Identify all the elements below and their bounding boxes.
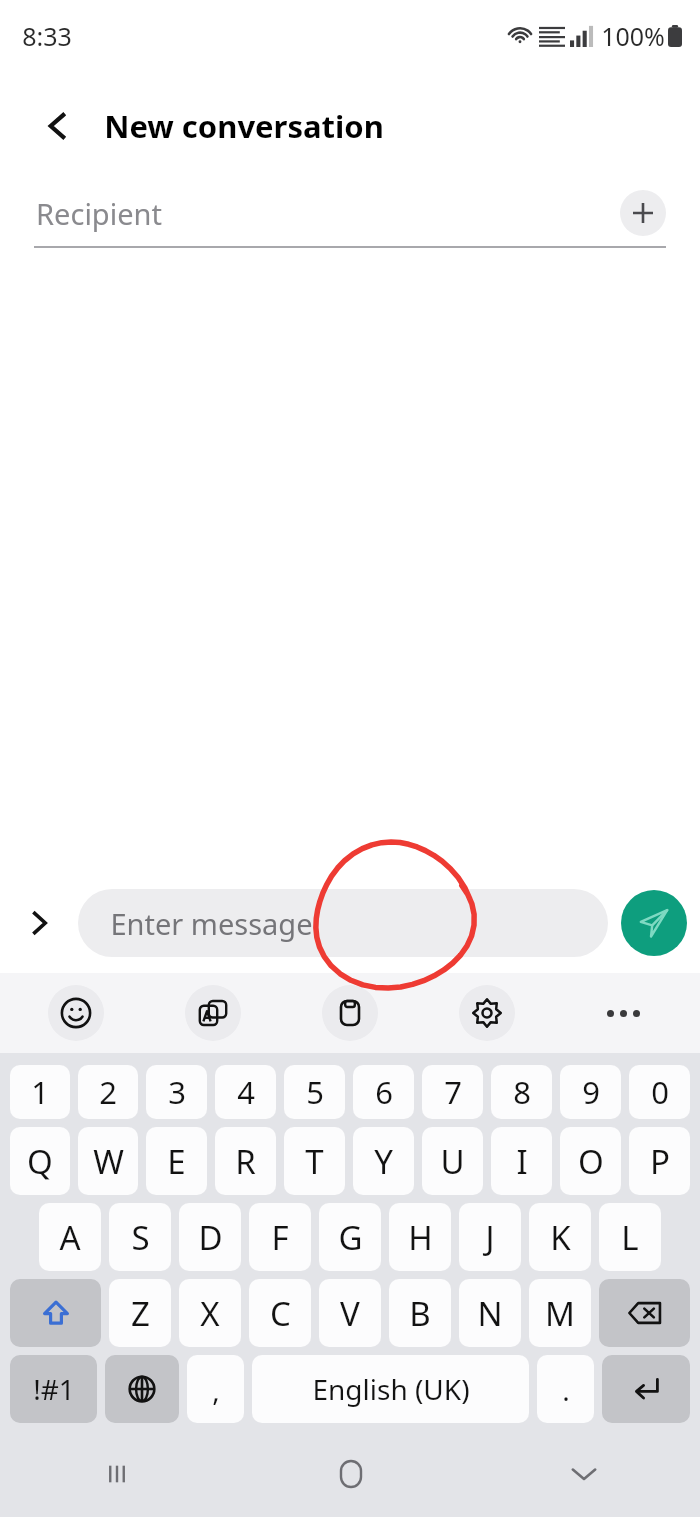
button[interactable]: Y [353, 1127, 414, 1195]
button[interactable]: 1 [10, 1065, 70, 1119]
button[interactable]: S [109, 1203, 171, 1271]
staticText: X [200, 1291, 220, 1336]
staticText: 8:33 [22, 19, 72, 53]
button[interactable]: H [389, 1203, 451, 1271]
staticText: 0 [651, 1071, 669, 1113]
staticText: C [270, 1291, 291, 1336]
button[interactable]: 5 [284, 1065, 345, 1119]
button[interactable]: Settings [418, 973, 555, 1053]
button[interactable]: X [179, 1279, 241, 1347]
button[interactable]: F [249, 1203, 311, 1271]
button[interactable]: Recents [0, 1431, 234, 1517]
button[interactable]: Hide keyboard [467, 1431, 700, 1517]
button[interactable]: enter [602, 1355, 690, 1423]
button[interactable]: globe [105, 1355, 179, 1423]
staticText: Z [131, 1291, 150, 1336]
button[interactable]: C [249, 1279, 311, 1347]
staticText: 100% [601, 19, 665, 53]
staticText: E [167, 1139, 186, 1184]
button[interactable]: Add recipient [620, 190, 666, 236]
button[interactable]: Clipboard [281, 973, 418, 1053]
staticText: B [409, 1291, 431, 1336]
button[interactable]: R [215, 1127, 276, 1195]
button[interactable]: 8 [491, 1065, 552, 1119]
button[interactable]: More options [555, 973, 692, 1053]
button[interactable]: D [179, 1203, 241, 1271]
button[interactable]: 6 [353, 1065, 414, 1119]
staticText: , [212, 1371, 220, 1409]
button[interactable]: T [284, 1127, 345, 1195]
button[interactable]: Emoji [8, 973, 144, 1053]
staticText: I [516, 1139, 528, 1184]
button[interactable]: 4 [215, 1065, 276, 1119]
button[interactable]: , [187, 1355, 244, 1423]
button[interactable]: J [459, 1203, 521, 1271]
staticText: V [340, 1291, 360, 1336]
staticText: 7 [444, 1071, 462, 1113]
staticText: H [408, 1215, 433, 1260]
staticText: K [550, 1215, 571, 1260]
staticText: 6 [375, 1071, 393, 1113]
staticText: D [198, 1215, 223, 1260]
staticText: N [477, 1291, 503, 1336]
button[interactable]: V [319, 1279, 381, 1347]
staticText: 1 [31, 1071, 49, 1113]
staticText: G [338, 1215, 363, 1260]
button[interactable]: 7 [422, 1065, 483, 1119]
staticText: 3 [168, 1071, 186, 1113]
button[interactable]: 0 [629, 1065, 690, 1119]
button[interactable]: Send [621, 890, 687, 956]
staticText: Enter message [110, 904, 313, 943]
button[interactable]: 9 [560, 1065, 621, 1119]
staticText: . [562, 1371, 570, 1409]
button[interactable]: back [599, 1279, 690, 1347]
button[interactable]: W [78, 1127, 138, 1195]
button[interactable]: O [560, 1127, 621, 1195]
button[interactable]: Translate [144, 973, 281, 1053]
staticText: A [59, 1215, 81, 1260]
staticText: 8 [513, 1071, 531, 1113]
staticText: !#1 [33, 1370, 75, 1408]
staticText: J [485, 1215, 495, 1260]
button[interactable]: Q [10, 1127, 70, 1195]
button[interactable]: Z [109, 1279, 171, 1347]
staticText: O [578, 1139, 604, 1184]
staticText: T [305, 1139, 324, 1184]
button[interactable]: U [422, 1127, 483, 1195]
button[interactable]: Back [30, 98, 86, 154]
staticText: S [131, 1215, 150, 1260]
button[interactable]: Recipient [34, 180, 620, 246]
button[interactable]: M [529, 1279, 591, 1347]
staticText: New conversation [104, 105, 384, 147]
button[interactable]: Home [234, 1431, 467, 1517]
staticText: F [271, 1215, 289, 1260]
staticText: M [545, 1291, 575, 1336]
button[interactable]: shift [10, 1279, 101, 1347]
staticText: 4 [237, 1071, 255, 1113]
staticText: 2 [99, 1071, 117, 1113]
staticText: W [93, 1139, 124, 1184]
staticText: U [440, 1139, 465, 1184]
staticText: 9 [582, 1071, 600, 1113]
button[interactable]: 2 [78, 1065, 138, 1119]
button[interactable]: 3 [146, 1065, 207, 1119]
button[interactable]: L [599, 1203, 661, 1271]
button[interactable]: P [629, 1127, 690, 1195]
staticText: P [650, 1139, 670, 1184]
button[interactable]: English (UK) [252, 1355, 529, 1423]
button[interactable]: Enter message [78, 889, 608, 957]
button[interactable]: . [537, 1355, 594, 1423]
staticText: Recipient [36, 194, 162, 233]
button[interactable]: B [389, 1279, 451, 1347]
button[interactable]: N [459, 1279, 521, 1347]
button[interactable]: A [39, 1203, 101, 1271]
button[interactable]: E [146, 1127, 207, 1195]
staticText: L [621, 1215, 639, 1260]
button[interactable]: I [491, 1127, 552, 1195]
button[interactable]: G [319, 1203, 381, 1271]
button[interactable]: !#1 [10, 1355, 97, 1423]
button[interactable]: Expand [0, 873, 78, 973]
button[interactable]: K [529, 1203, 591, 1271]
staticText: Y [374, 1139, 393, 1184]
staticText: R [235, 1139, 256, 1184]
